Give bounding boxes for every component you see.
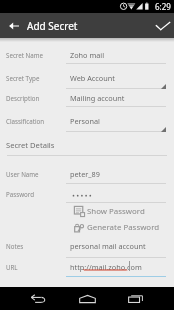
button[interactable]: Secret Name xyxy=(0,42,174,64)
button[interactable]: Classification xyxy=(0,107,174,132)
button[interactable]: Notes xyxy=(0,236,174,258)
button[interactable]: Home xyxy=(75,287,99,310)
staticText: Mailing account xyxy=(70,93,125,103)
button[interactable]: Password xyxy=(0,184,174,203)
staticText: Password xyxy=(6,190,34,198)
staticText: Secret Details xyxy=(6,140,55,150)
button[interactable]: URL xyxy=(0,258,174,277)
staticText: Notes xyxy=(6,242,24,250)
button[interactable]: Secret Type xyxy=(0,64,174,89)
staticText: User Name xyxy=(6,170,39,178)
button[interactable]: Generate Password xyxy=(0,219,174,235)
staticText: Secret Type xyxy=(6,74,40,82)
staticText: 6:29 xyxy=(155,1,171,12)
button[interactable]: Navigate up xyxy=(3,15,24,36)
staticText: Secret Name xyxy=(6,51,44,59)
staticText: personal mail account xyxy=(70,241,146,251)
staticText: URL xyxy=(6,263,18,271)
staticText: Show Password xyxy=(87,206,145,217)
button[interactable]: Save xyxy=(152,15,173,36)
button[interactable]: Show Password xyxy=(0,203,174,219)
staticText: Personal xyxy=(70,116,100,126)
staticText: Description xyxy=(6,94,40,102)
staticText: Web Account xyxy=(70,73,115,83)
staticText: Add Secret xyxy=(27,19,78,33)
staticText: Generate Password xyxy=(87,222,160,233)
staticText: Classification xyxy=(6,117,45,125)
button[interactable]: Back xyxy=(26,287,50,310)
staticText: http://mail.zoho.com xyxy=(70,262,142,272)
button[interactable]: User Name xyxy=(0,156,174,184)
staticText: peter_89 xyxy=(70,169,100,179)
button[interactable]: Description xyxy=(0,89,174,107)
button[interactable]: Recent apps xyxy=(124,287,148,310)
staticText: Zoho mail xyxy=(70,50,105,60)
